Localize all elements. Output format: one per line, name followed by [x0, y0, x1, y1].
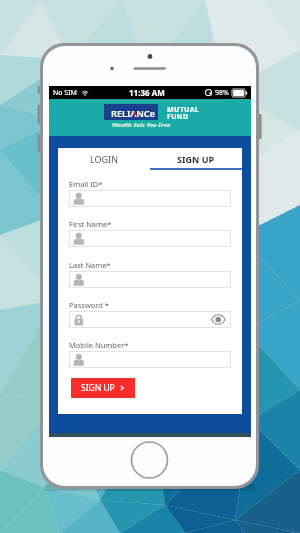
- button[interactable]: First Name*: [69, 230, 231, 247]
- staticText: 11:36 AM: [129, 87, 165, 98]
- staticText: Mobile Number*: [69, 340, 129, 350]
- staticText: No SIM: [53, 88, 77, 98]
- staticText: SIGN UP: [177, 153, 215, 165]
- button[interactable]: LOGIN: [58, 148, 150, 169]
- staticText: Password *: [69, 300, 110, 310]
- staticText: 98%: [215, 88, 229, 98]
- staticText: RELIANCe: [111, 107, 155, 120]
- staticText: Email ID*: [69, 179, 103, 189]
- button[interactable]: SIGN UP: [150, 148, 242, 169]
- staticText: Wealth Sets You Free: [112, 120, 171, 128]
- staticText: First Name*: [69, 219, 112, 229]
- staticText: Last Name*: [69, 260, 111, 270]
- button[interactable]: Email ID*: [69, 190, 231, 207]
- button[interactable]: Last Name*: [69, 271, 231, 288]
- staticText: SIGN UP: [81, 382, 115, 394]
- staticText: LOGIN: [90, 153, 119, 165]
- button[interactable]: Mobile Number*: [69, 351, 231, 368]
- staticText: FUND: [167, 111, 189, 121]
- button[interactable]: Password *: [69, 311, 231, 328]
- staticText: MUTUAL: [167, 104, 200, 114]
- button[interactable]: SIGN UP: [71, 378, 135, 398]
